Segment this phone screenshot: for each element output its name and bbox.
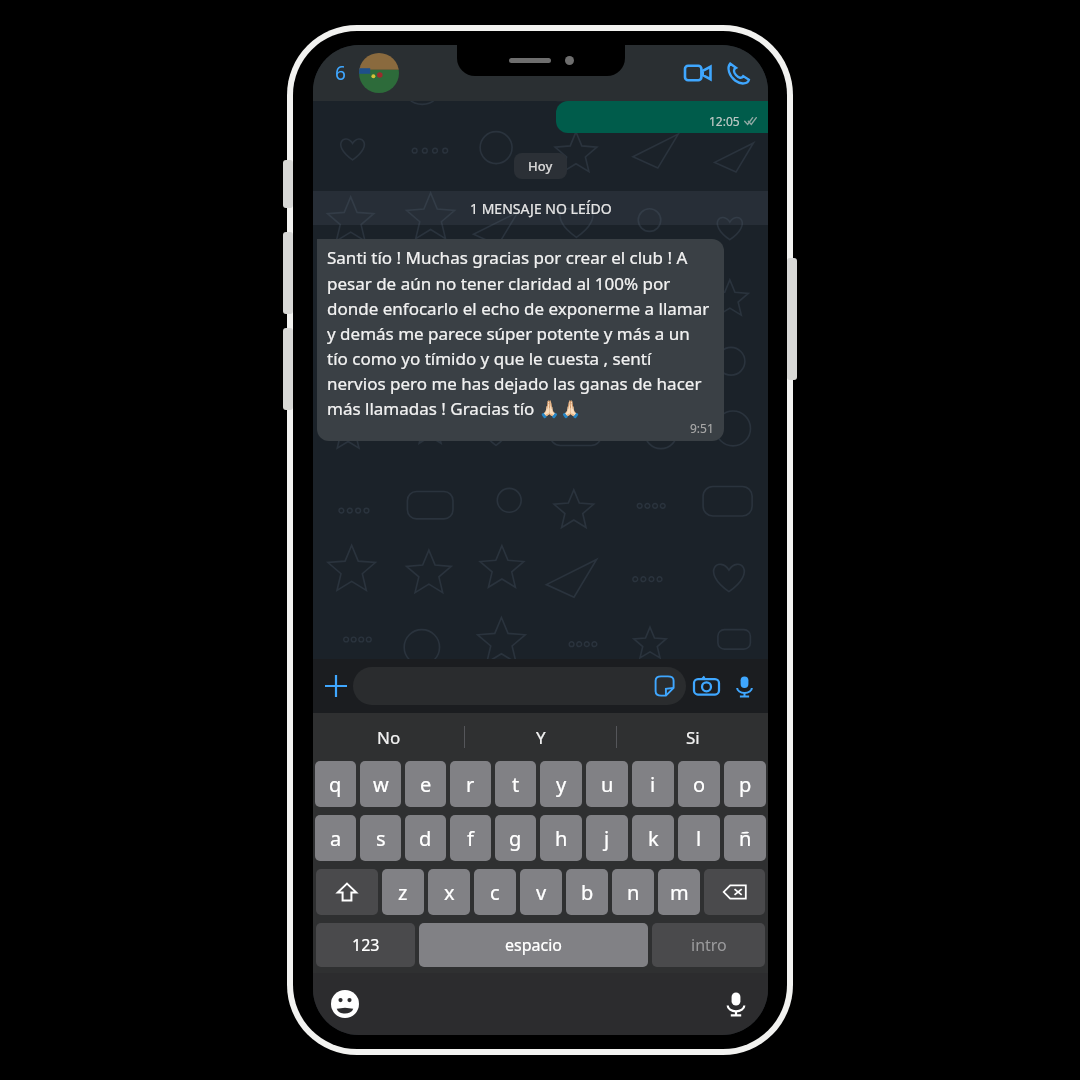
button[interactable]: g (495, 815, 536, 861)
staticText: d (419, 825, 432, 852)
staticText: w (373, 771, 389, 798)
staticText: intro (691, 934, 727, 956)
button[interactable]: Santi tío ! Muchas gracias por crear el … (317, 239, 724, 441)
staticText: b (581, 879, 594, 906)
button[interactable]: Video call (678, 53, 718, 93)
staticText: 6 (335, 60, 346, 86)
staticText: c (490, 879, 500, 906)
button[interactable]: u (586, 761, 628, 807)
staticText: 12:05 (709, 113, 740, 129)
button[interactable]: Dictation (718, 986, 754, 1022)
staticText: g (509, 825, 522, 852)
button[interactable]: v (520, 869, 562, 915)
staticText: ñ (739, 825, 752, 852)
button[interactable]: z (382, 869, 424, 915)
button[interactable]: r (450, 761, 491, 807)
button[interactable]: 123 (316, 923, 415, 967)
staticText: j (604, 825, 610, 852)
staticText: n (627, 879, 640, 906)
button[interactable]: Profile photo (359, 53, 399, 93)
button[interactable]: 12:05 (556, 101, 768, 133)
button[interactable]: s (360, 815, 401, 861)
button[interactable]: No (313, 713, 464, 761)
button[interactable]: Stickers (353, 667, 686, 705)
button[interactable]: Si (617, 713, 768, 761)
button[interactable]: Camera (686, 666, 726, 706)
button[interactable]: Voice call (718, 53, 758, 93)
button[interactable]: f (450, 815, 491, 861)
button[interactable]: p (724, 761, 766, 807)
button[interactable]: ñ (724, 815, 766, 861)
staticText: p (739, 771, 752, 798)
button[interactable]: Backspace (704, 869, 765, 915)
button[interactable]: k (632, 815, 674, 861)
button[interactable]: Shift (316, 869, 378, 915)
button[interactable]: Back (323, 56, 357, 90)
button[interactable]: i (632, 761, 674, 807)
staticText: v (536, 879, 547, 906)
staticText: Si (686, 726, 700, 749)
button[interactable]: m (658, 869, 700, 915)
staticText: e (420, 771, 432, 798)
staticText: u (601, 771, 614, 798)
staticText: k (648, 825, 659, 852)
button[interactable]: n (612, 869, 654, 915)
other: Stickers (652, 674, 676, 698)
staticText: i (650, 771, 656, 798)
staticText: Santi tío ! Muchas gracias por crear el … (327, 246, 714, 420)
button[interactable]: j (586, 815, 628, 861)
staticText: q (329, 771, 342, 798)
button[interactable]: y (540, 761, 582, 807)
button[interactable]: intro (652, 923, 765, 967)
button[interactable]: b (566, 869, 608, 915)
button[interactable]: a (315, 815, 356, 861)
button[interactable]: e (405, 761, 446, 807)
button[interactable]: w (360, 761, 401, 807)
button[interactable]: x (428, 869, 470, 915)
button[interactable]: espacio (419, 923, 648, 967)
staticText: t (512, 771, 520, 798)
button[interactable]: h (540, 815, 582, 861)
staticText: a (330, 825, 342, 852)
staticText: Hoy (528, 157, 553, 175)
staticText: x (444, 879, 455, 906)
staticText: r (466, 771, 475, 798)
button[interactable]: q (315, 761, 356, 807)
staticText: l (696, 825, 702, 852)
button[interactable]: Y (465, 713, 616, 761)
staticText: m (670, 879, 689, 906)
staticText: y (556, 771, 567, 798)
button[interactable]: l (678, 815, 720, 861)
staticText: f (467, 825, 474, 852)
staticText: espacio (505, 934, 562, 956)
staticText: h (555, 825, 568, 852)
staticText: 123 (352, 934, 380, 956)
staticText: 9:51 (690, 420, 714, 436)
button[interactable]: Voice message (726, 668, 762, 704)
staticText: No (377, 726, 401, 749)
staticText: o (693, 771, 706, 798)
button[interactable]: d (405, 815, 446, 861)
button[interactable]: Attach (319, 669, 353, 703)
staticText: Y (536, 726, 546, 749)
button[interactable]: o (678, 761, 720, 807)
button[interactable]: t (495, 761, 536, 807)
staticText: z (398, 879, 408, 906)
button[interactable]: c (474, 869, 516, 915)
staticText: 1 MENSAJE NO LEÍDO (470, 199, 612, 218)
staticText: s (376, 825, 386, 852)
button[interactable]: Emoji (327, 986, 363, 1022)
